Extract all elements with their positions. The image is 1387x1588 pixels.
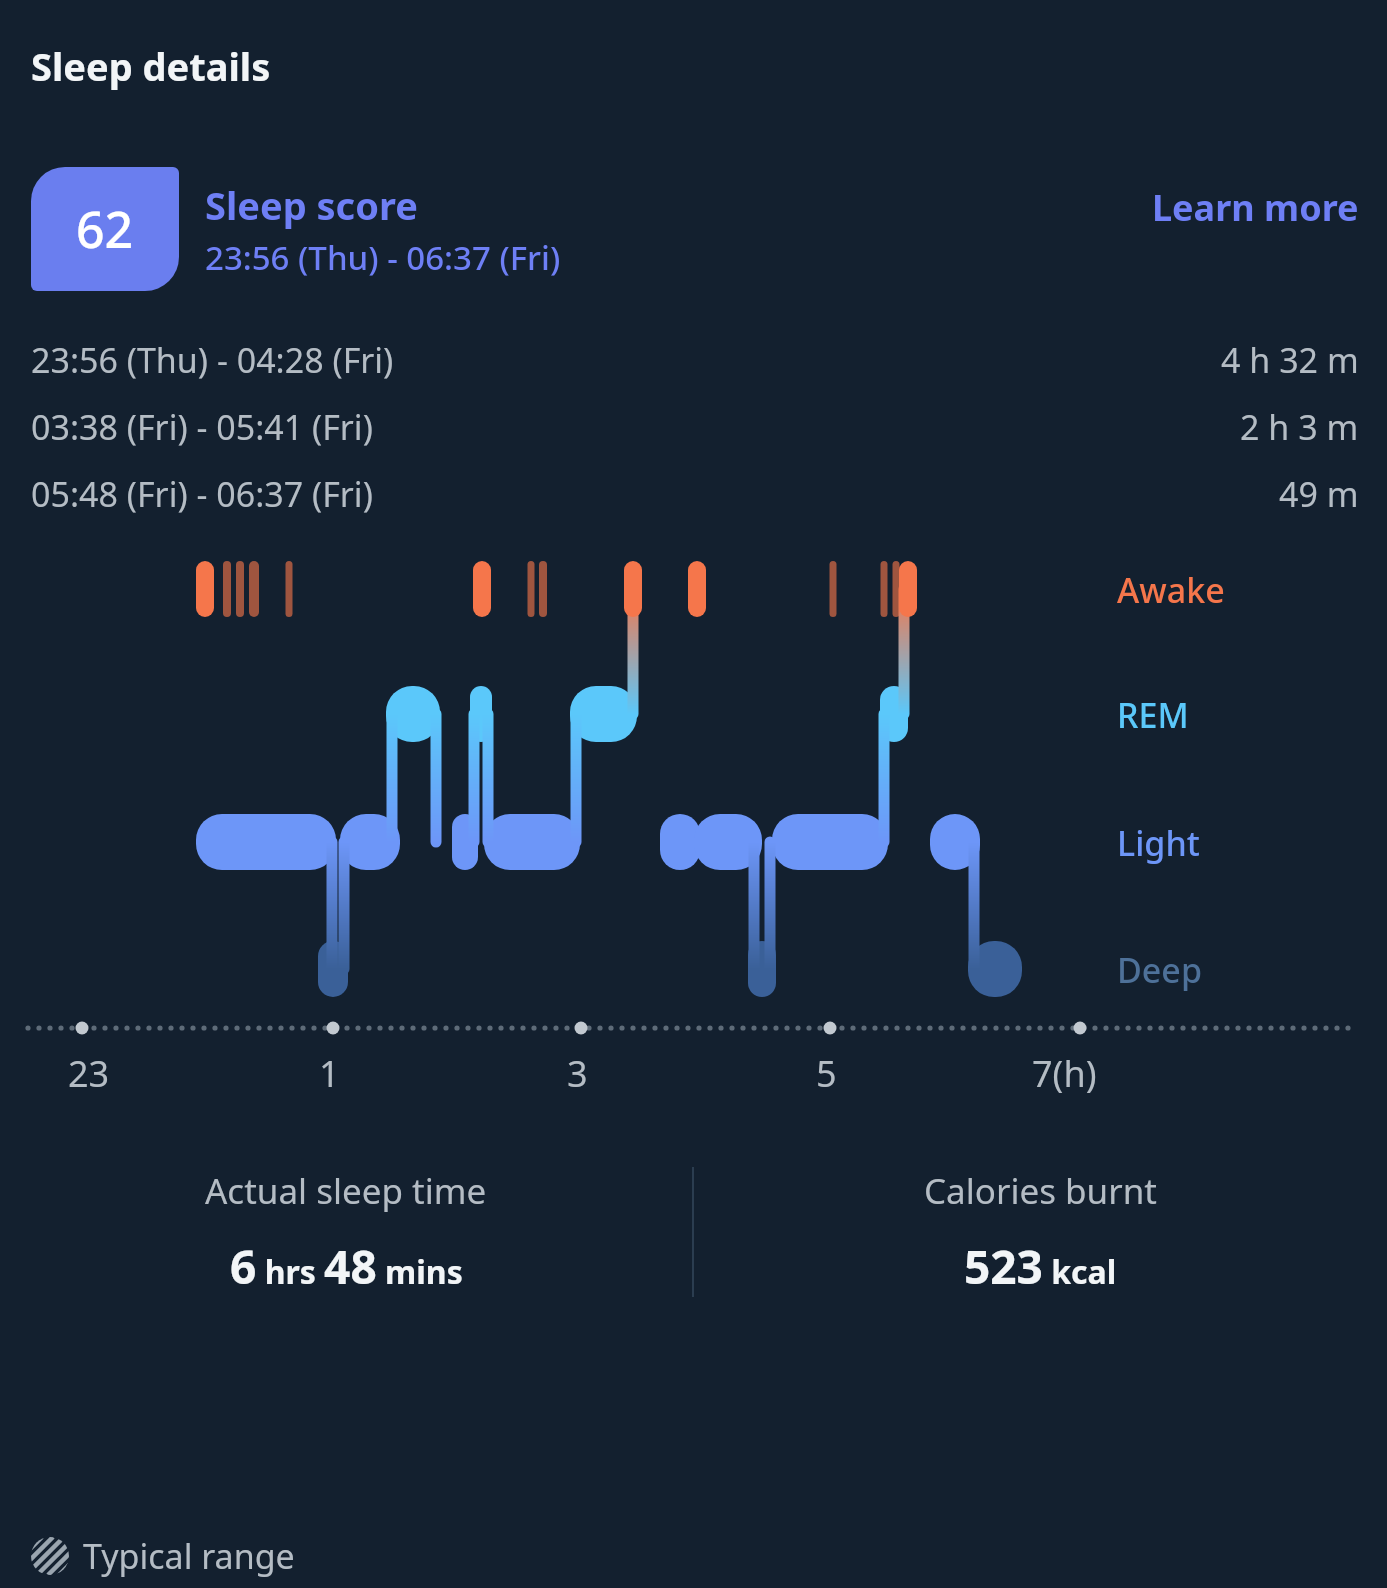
- staticText: Typical range: [83, 1533, 295, 1579]
- staticText: 23:56 (Thu) - 04:28 (Fri): [31, 337, 394, 383]
- staticText: 05:48 (Fri) - 06:37 (Fri): [31, 471, 373, 517]
- staticText: 23:56 (Thu) - 06:37 (Fri): [205, 235, 561, 280]
- staticText: Sleep score: [205, 179, 418, 231]
- staticText: Light: [1117, 820, 1200, 866]
- button[interactable]: Calories burnt: [694, 1167, 1387, 1298]
- staticText: REM: [1117, 692, 1189, 738]
- staticText: 4 h 32 m: [1221, 337, 1359, 383]
- button[interactable]: 62: [31, 167, 179, 291]
- staticText: Actual sleep time: [205, 1167, 487, 1215]
- staticText: Deep: [1117, 947, 1202, 993]
- staticText: 7(h): [1032, 1049, 1097, 1098]
- staticText: 62: [76, 195, 134, 263]
- staticText: 03:38 (Fri) - 05:41 (Fri): [31, 404, 373, 450]
- staticText: 3: [567, 1049, 588, 1098]
- button[interactable]: Actual sleep time: [0, 1167, 692, 1298]
- staticText: Learn more: [1152, 183, 1359, 232]
- button[interactable]: Learn more: [1152, 183, 1359, 276]
- staticText: 5: [816, 1049, 837, 1098]
- staticText: 1: [319, 1049, 340, 1098]
- staticText: Awake: [1117, 567, 1225, 613]
- staticText: 6 hrs 48 mins: [230, 1235, 463, 1298]
- staticText: Sleep details: [31, 40, 271, 92]
- staticText: 49 m: [1279, 471, 1359, 517]
- staticText: Calories burnt: [924, 1167, 1157, 1215]
- staticText: 523 kcal: [964, 1235, 1117, 1298]
- staticText: 23: [68, 1049, 110, 1098]
- staticText: 2 h 3 m: [1240, 404, 1359, 450]
